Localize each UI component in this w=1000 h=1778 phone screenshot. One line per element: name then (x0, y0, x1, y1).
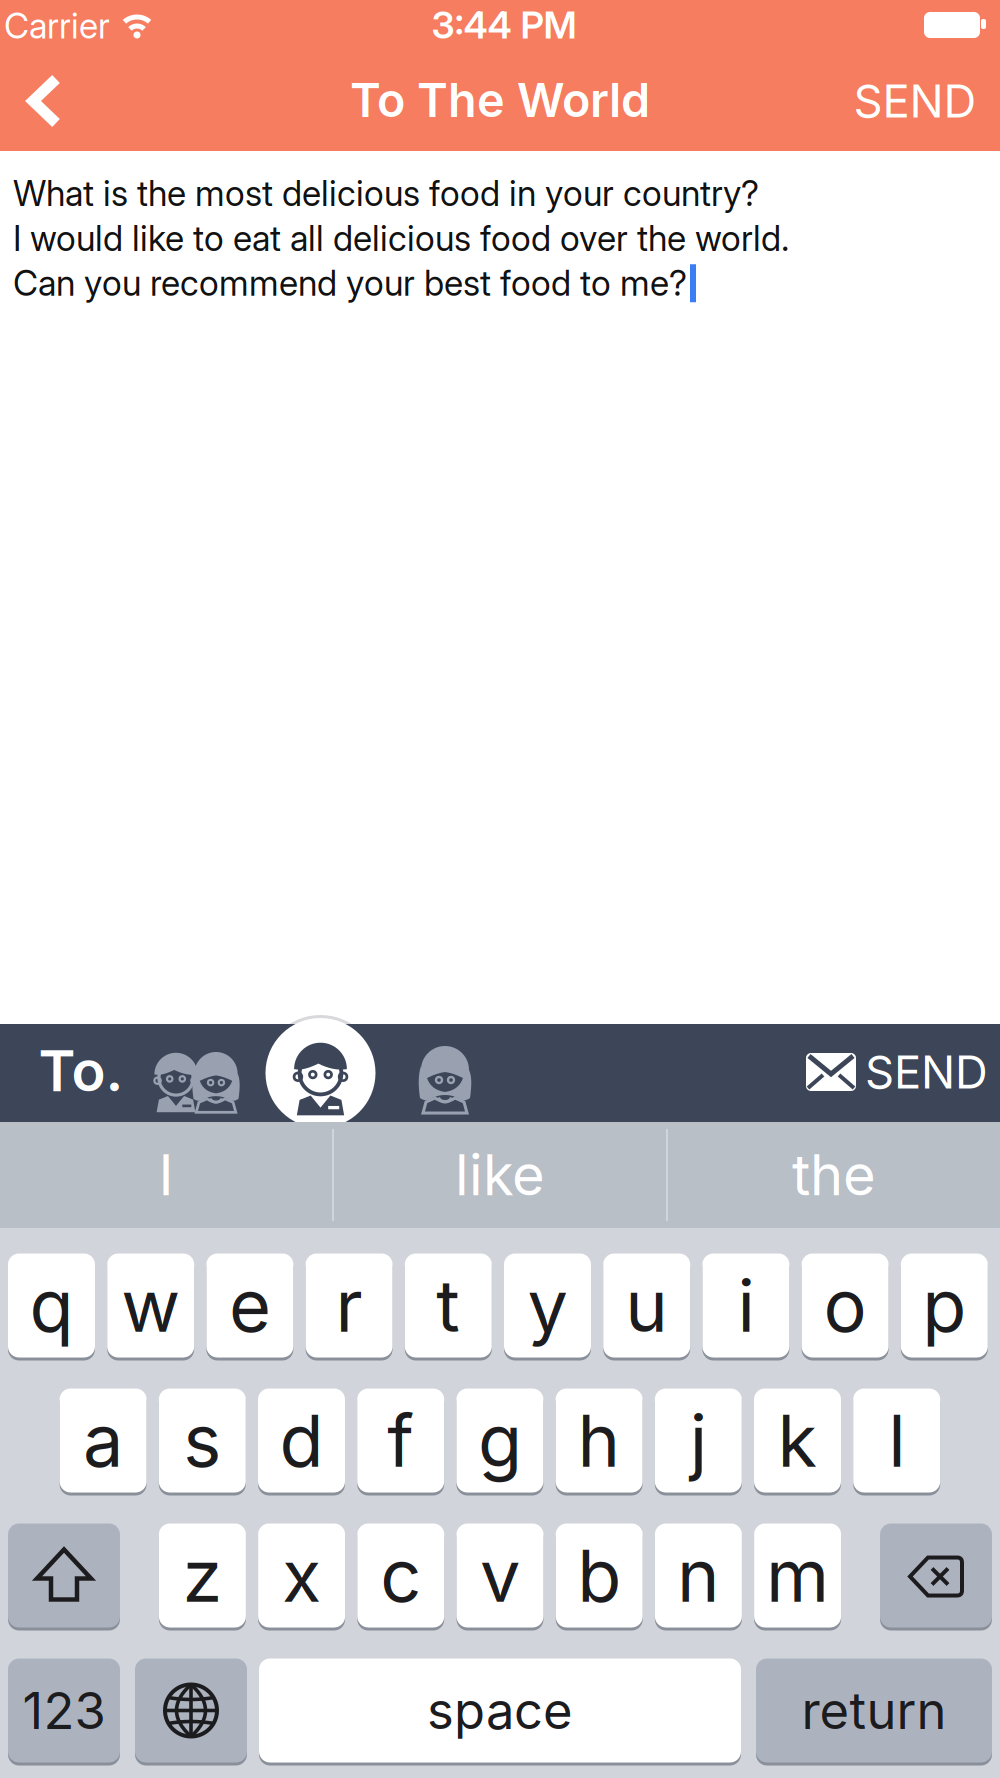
button[interactable]: i (702, 1252, 789, 1359)
button[interactable] (880, 1522, 992, 1629)
staticText: I would like to eat all delicious food o… (13, 218, 789, 259)
staticText: What is the most delicious food in your … (13, 173, 759, 214)
staticText: Can you recommend your best food to me? (13, 263, 687, 304)
button[interactable]: q (8, 1252, 95, 1359)
staticText: y (527, 1263, 567, 1348)
staticText: t (436, 1263, 460, 1348)
staticText: r (336, 1263, 363, 1348)
button[interactable] (135, 1657, 247, 1764)
staticText: b (577, 1533, 621, 1618)
button[interactable]: f (357, 1387, 444, 1494)
staticText: To. (38, 1038, 123, 1104)
staticText: p (922, 1263, 966, 1348)
button[interactable]: v (456, 1522, 543, 1629)
staticText: c (380, 1533, 421, 1618)
staticText: k (777, 1398, 817, 1483)
button[interactable]: h (556, 1387, 643, 1494)
staticText: 3:44 PM (431, 3, 576, 47)
button[interactable]: l (853, 1387, 940, 1494)
button[interactable]: g (456, 1387, 543, 1494)
staticText: o (824, 1263, 867, 1348)
staticText: space (427, 1681, 573, 1740)
button[interactable]: space (259, 1657, 741, 1764)
button[interactable]: I (1, 1122, 331, 1228)
staticText: f (387, 1398, 414, 1483)
staticText: w (121, 1263, 180, 1348)
staticText: j (690, 1398, 707, 1483)
staticText: i (737, 1263, 754, 1348)
staticText: like (455, 1142, 545, 1208)
button[interactable]: 123 (8, 1657, 120, 1764)
button[interactable]: like (335, 1122, 665, 1228)
staticText: a (83, 1398, 123, 1483)
button[interactable] (413, 1040, 477, 1116)
staticText: SEND (853, 74, 976, 128)
staticText: m (766, 1533, 829, 1618)
button[interactable]: the (669, 1122, 999, 1228)
button[interactable] (140, 1042, 250, 1115)
button[interactable] (8, 1522, 120, 1629)
staticText: return (801, 1681, 946, 1740)
button[interactable] (264, 1017, 376, 1129)
button[interactable]: d (258, 1387, 345, 1494)
button[interactable]: r (306, 1252, 393, 1359)
button[interactable]: SEND (806, 1037, 988, 1107)
button[interactable]: b (556, 1522, 643, 1629)
button[interactable]: n (655, 1522, 742, 1629)
button[interactable]: t (405, 1252, 492, 1359)
staticText: u (625, 1263, 668, 1348)
staticText: d (279, 1398, 323, 1483)
button[interactable]: o (802, 1252, 889, 1359)
staticText: e (229, 1263, 271, 1348)
button[interactable]: a (60, 1387, 147, 1494)
button[interactable]: return (756, 1657, 992, 1764)
staticText: the (792, 1142, 876, 1208)
staticText: 123 (22, 1681, 105, 1740)
staticText: To The World (350, 72, 650, 128)
button[interactable]: w (107, 1252, 194, 1359)
staticText: SEND (865, 1045, 988, 1099)
staticText: n (677, 1533, 720, 1618)
staticText: z (182, 1533, 222, 1618)
button[interactable]: m (754, 1522, 841, 1629)
button[interactable]: y (504, 1252, 591, 1359)
staticText: l (888, 1398, 905, 1483)
button[interactable]: x (258, 1522, 345, 1629)
button[interactable]: SEND (845, 66, 985, 136)
staticText: q (29, 1263, 73, 1348)
staticText: x (282, 1533, 321, 1618)
button[interactable]: k (754, 1387, 841, 1494)
button[interactable]: u (603, 1252, 690, 1359)
staticText: g (478, 1398, 522, 1483)
button[interactable]: s (159, 1387, 246, 1494)
button[interactable]: e (206, 1252, 293, 1359)
button[interactable]: j (655, 1387, 742, 1494)
staticText: h (578, 1398, 621, 1483)
staticText: s (183, 1398, 221, 1483)
staticText: v (480, 1533, 520, 1618)
button[interactable]: p (901, 1252, 988, 1359)
staticText: Carrier (4, 6, 110, 46)
button[interactable] (22, 73, 68, 129)
button[interactable]: z (159, 1522, 246, 1629)
staticText: I (158, 1142, 173, 1208)
button[interactable]: c (357, 1522, 444, 1629)
